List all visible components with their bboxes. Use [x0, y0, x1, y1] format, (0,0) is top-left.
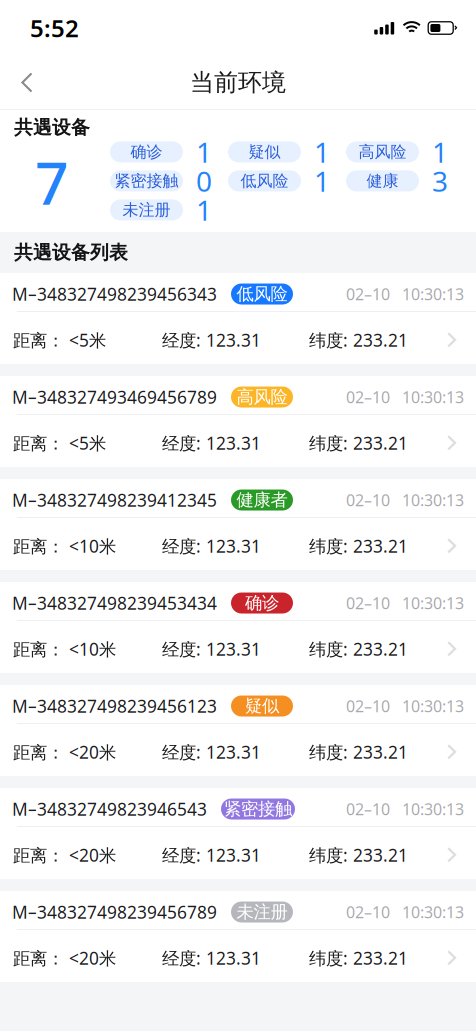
staticText: 1: [196, 133, 212, 170]
staticText: 低风险: [236, 283, 287, 305]
staticText: 经度: 123.31: [162, 328, 261, 351]
staticText: 1: [432, 133, 448, 170]
staticText: 纬度: 233.21: [309, 843, 408, 866]
staticText: 低风险: [240, 171, 288, 191]
staticText: 经度: 123.31: [162, 534, 261, 557]
button[interactable]: M–348327498239456123: [0, 685, 476, 776]
staticText: 距离： <20米: [13, 843, 116, 866]
button[interactable]: M–348327498239453434: [0, 582, 476, 673]
staticText: 纬度: 233.21: [309, 431, 408, 454]
staticText: 紧密接触: [224, 798, 292, 820]
staticText: 共遇设备列表: [14, 241, 128, 264]
button[interactable]: M–348327493469456789: [0, 376, 476, 467]
button[interactable]: M–348327498239456343: [0, 273, 476, 364]
staticText: 未注册: [236, 901, 287, 923]
staticText: 健康者: [236, 489, 287, 511]
staticText: 距离： <10米: [13, 637, 116, 660]
staticText: 紧密接触: [114, 171, 178, 191]
staticText: 纬度: 233.21: [309, 637, 408, 660]
staticText: 经度: 123.31: [162, 946, 261, 969]
staticText: M–348327498239412345: [12, 488, 217, 511]
staticText: 距离： <5米: [13, 431, 106, 454]
staticText: M–348327498239453434: [12, 591, 217, 614]
staticText: 经度: 123.31: [162, 843, 261, 866]
button[interactable]: M–348327498239456789: [0, 891, 476, 982]
staticText: M–348327498239456789: [12, 900, 217, 923]
staticText: 02–10 10:30:13: [346, 386, 464, 408]
button[interactable]: M–348327498239412345: [0, 479, 476, 570]
staticText: 健康: [366, 171, 398, 191]
staticText: 未注册: [122, 200, 170, 220]
staticText: 经度: 123.31: [162, 637, 261, 660]
staticText: 纬度: 233.21: [309, 534, 408, 557]
staticText: 确诊: [245, 592, 279, 614]
staticText: 距离： <20米: [13, 740, 116, 763]
staticText: 1: [196, 191, 212, 228]
staticText: 经度: 123.31: [162, 740, 261, 763]
staticText: M–348327498239456123: [12, 694, 217, 717]
staticText: 高风险: [358, 142, 406, 162]
staticText: 02–10 10:30:13: [346, 489, 464, 511]
staticText: 02–10 10:30:13: [346, 592, 464, 614]
staticText: 经度: 123.31: [162, 431, 261, 454]
staticText: 7: [35, 143, 69, 221]
staticText: 纬度: 233.21: [309, 328, 408, 351]
staticText: 当前环境: [190, 68, 286, 97]
staticText: 1: [314, 162, 330, 199]
staticText: 02–10 10:30:13: [346, 283, 464, 305]
staticText: 距离： <10米: [13, 534, 116, 557]
staticText: 02–10 10:30:13: [346, 695, 464, 717]
staticText: 距离： <20米: [13, 946, 116, 969]
staticText: 确诊: [130, 142, 162, 162]
staticText: 1: [314, 133, 330, 170]
staticText: M–34832749823946543: [12, 797, 207, 820]
staticText: 纬度: 233.21: [309, 740, 408, 763]
staticText: 3: [432, 162, 448, 199]
staticText: 共遇设备: [14, 116, 90, 139]
staticText: M–348327498239456343: [12, 282, 217, 305]
button[interactable]: M–34832749823946543: [0, 788, 476, 879]
staticText: 02–10 10:30:13: [346, 901, 464, 923]
button[interactable]: Back: [0, 60, 57, 105]
staticText: M–348327493469456789: [12, 385, 217, 408]
staticText: 高风险: [236, 386, 287, 408]
staticText: 纬度: 233.21: [309, 946, 408, 969]
staticText: 02–10 10:30:13: [346, 798, 464, 820]
staticText: 疑似: [245, 695, 279, 717]
staticText: 0: [196, 162, 212, 199]
staticText: 疑似: [248, 142, 280, 162]
staticText: 距离： <5米: [13, 328, 106, 351]
staticText: 5:52: [30, 12, 79, 44]
